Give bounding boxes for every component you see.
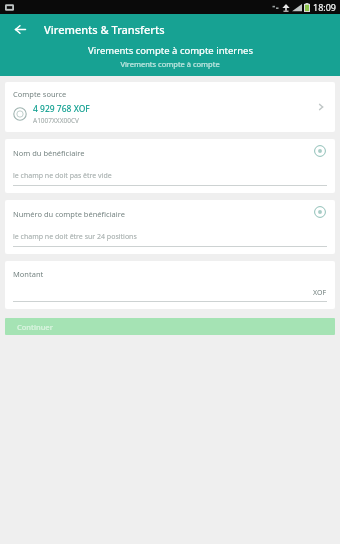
- button[interactable]: Aide: [313, 205, 327, 219]
- staticText: Virements compte à compte internes: [88, 44, 253, 57]
- staticText: A1007XXX00CV: [33, 116, 79, 125]
- button[interactable]: Aide: [313, 144, 327, 158]
- staticText: Virements compte à compte: [120, 59, 220, 69]
- staticText: Compte source: [13, 89, 67, 99]
- button[interactable]: Continuer: [5, 318, 335, 335]
- staticText: Montant: [13, 269, 44, 279]
- staticText: Numéro du compte bénéficiaire: [13, 209, 125, 219]
- button[interactable]: Compte source: [5, 82, 335, 132]
- staticText: le champ ne doit être sur 24 positions: [13, 232, 137, 242]
- staticText: le champ ne doit pas être vide: [13, 171, 112, 181]
- button[interactable]: Numéro du compte bénéficiaire: [5, 200, 335, 254]
- staticText: Nom du bénéficiaire: [13, 148, 85, 158]
- button[interactable]: Nom du bénéficiaire: [5, 139, 335, 193]
- button[interactable]: Montant: [5, 261, 335, 309]
- staticText: Continuer: [17, 322, 53, 332]
- staticText: Virements & Transferts: [44, 22, 165, 37]
- staticText: 18:09: [313, 1, 337, 13]
- button[interactable]: Retour: [8, 17, 32, 41]
- staticText: 4 929 768 XOF: [33, 103, 90, 115]
- staticText: XOF: [313, 288, 327, 298]
